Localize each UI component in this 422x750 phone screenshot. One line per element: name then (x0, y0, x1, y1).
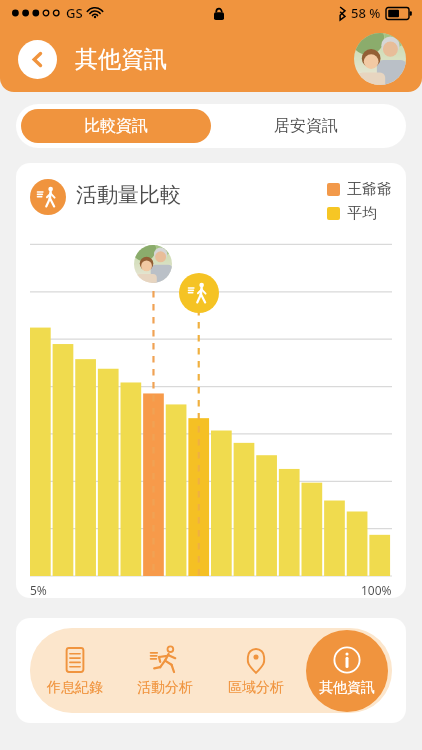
staticText: 區域分析 (228, 679, 284, 697)
button[interactable]: 居安資訊 (211, 109, 401, 143)
button[interactable]: 比較資訊 (21, 109, 211, 143)
button[interactable]: 其他資訊 (306, 630, 388, 712)
staticText: 作息紀錄 (47, 679, 103, 697)
staticText: 居安資訊 (274, 116, 338, 136)
staticText: GS (66, 4, 83, 22)
staticText: 平均 (347, 204, 377, 223)
staticText: 其他資訊 (75, 45, 167, 74)
button[interactable]: Back (18, 40, 57, 79)
staticText: 王爺爺 (347, 180, 392, 199)
button[interactable]: 作息紀錄 (34, 630, 116, 712)
button[interactable]: 區域分析 (215, 630, 297, 712)
staticText: 活動量比較 (76, 182, 181, 208)
staticText: 5% (30, 582, 47, 598)
staticText: 100% (361, 582, 392, 598)
staticText: 58 % (351, 4, 381, 22)
staticText: 活動分析 (137, 679, 193, 697)
staticText: 比較資訊 (84, 116, 148, 136)
button[interactable]: Profile (354, 33, 406, 85)
staticText: 其他資訊 (319, 679, 375, 697)
button[interactable]: 活動分析 (124, 630, 206, 712)
